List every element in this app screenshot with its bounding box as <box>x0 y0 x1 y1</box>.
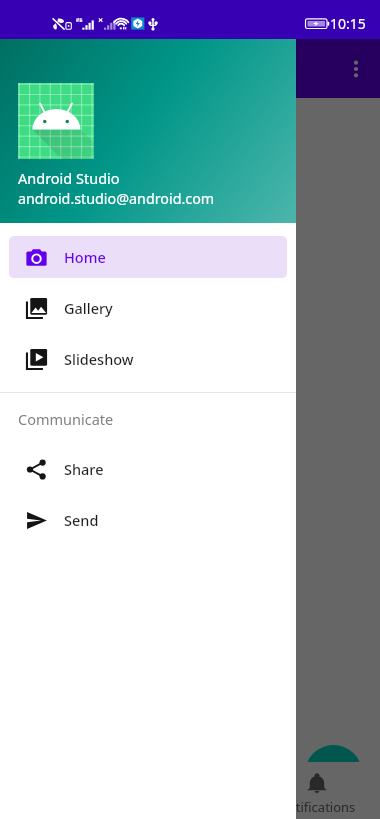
staticText: Send <box>64 510 99 530</box>
staticText: Android Studio <box>18 168 120 188</box>
staticText: 10:15 <box>330 14 366 33</box>
button[interactable]: Share <box>9 448 287 490</box>
button[interactable]: Add <box>305 745 362 802</box>
staticText: Slideshow <box>64 349 134 369</box>
button[interactable]: Home <box>9 236 287 278</box>
staticText: Home <box>64 247 106 267</box>
button[interactable]: Gallery <box>9 287 287 329</box>
staticText: Share <box>64 459 104 479</box>
staticText: Gallery <box>64 298 113 318</box>
button[interactable]: Slideshow <box>9 338 287 380</box>
staticText: Notifications <box>278 798 356 816</box>
button[interactable]: Notifications <box>253 762 380 819</box>
button[interactable]: Send <box>9 499 287 541</box>
staticText: android.studio@android.com <box>18 189 215 208</box>
staticText: Communicate <box>18 409 114 429</box>
button[interactable]: More options <box>332 45 380 93</box>
staticText: NavDrawer <box>72 58 162 81</box>
